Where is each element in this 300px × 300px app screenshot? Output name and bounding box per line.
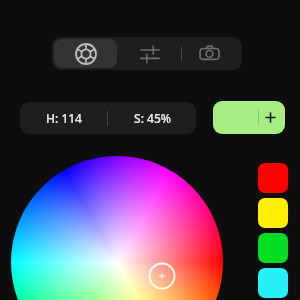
button[interactable]: Adjust sliders xyxy=(119,38,181,69)
button[interactable]: Color swatch 1 xyxy=(258,163,288,193)
button[interactable]: Color swatch 2 xyxy=(258,198,288,228)
button[interactable]: Color wheel xyxy=(54,39,117,68)
button[interactable]: Add current color xyxy=(213,101,285,134)
staticText: H: 114 xyxy=(46,110,82,126)
button[interactable]: Color swatch 3 xyxy=(258,233,288,263)
button[interactable]: Color swatch 4 xyxy=(258,268,288,298)
button[interactable]: H: 114 xyxy=(20,102,196,134)
staticText: S: 45% xyxy=(134,110,171,126)
button[interactable]: Camera xyxy=(182,38,237,69)
button[interactable]: Color wheel picker xyxy=(11,156,223,300)
